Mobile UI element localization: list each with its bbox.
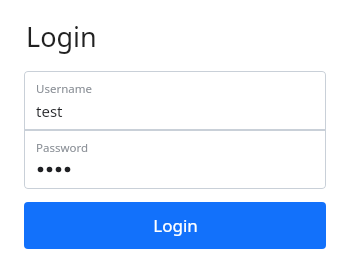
button[interactable]: Login	[24, 202, 326, 249]
button[interactable]: Username	[24, 71, 326, 130]
staticText: Username	[36, 81, 92, 97]
staticText: test	[36, 101, 63, 121]
staticText: Login	[153, 214, 198, 237]
staticText: Login	[26, 18, 97, 55]
button[interactable]: Password	[24, 130, 326, 189]
staticText: Password	[36, 140, 89, 156]
